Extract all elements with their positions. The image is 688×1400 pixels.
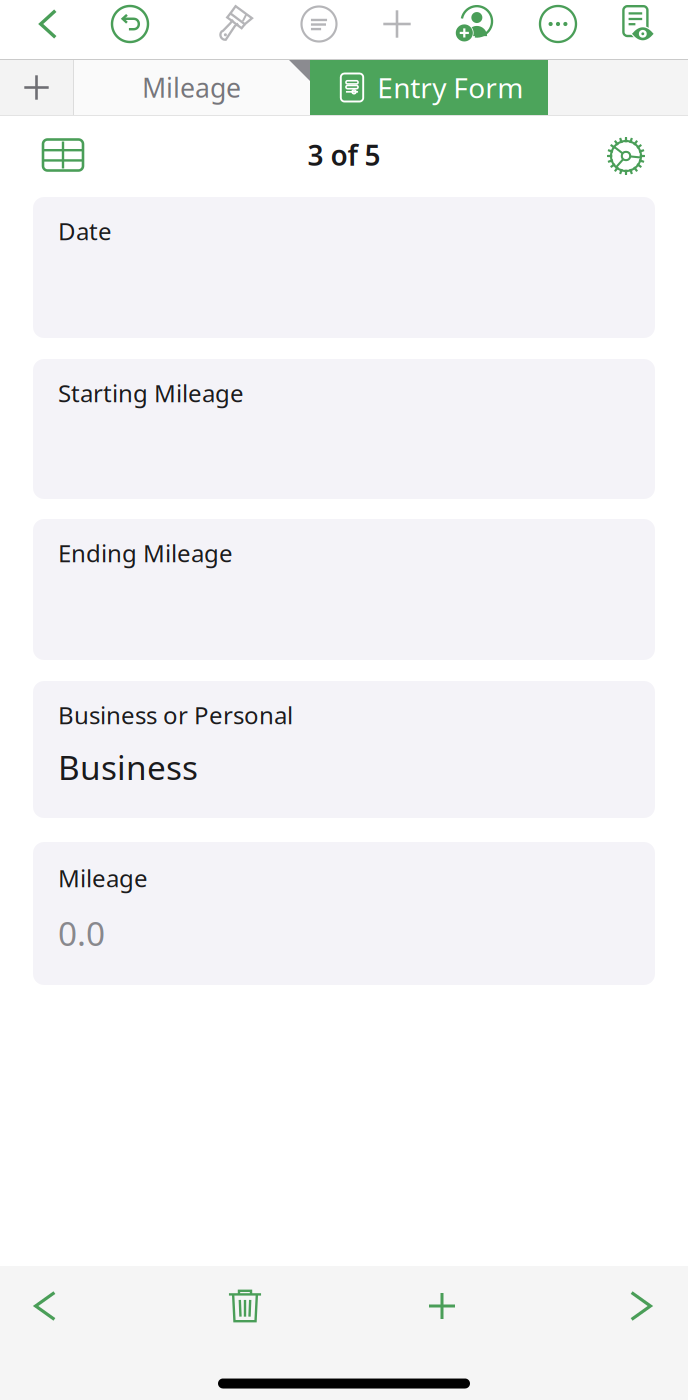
- staticText: Entry Form: [377, 69, 523, 106]
- staticText: Business or Personal: [58, 699, 293, 731]
- button[interactable]: Add record: [404, 1272, 480, 1340]
- button[interactable]: Form settings: [589, 128, 663, 184]
- staticText: 3 of 5: [307, 136, 380, 174]
- staticText: Starting Mileage: [58, 377, 244, 409]
- staticText: Mileage: [58, 862, 148, 894]
- button[interactable]: Insert: [364, 0, 430, 48]
- staticText: 0.0: [58, 911, 105, 955]
- button[interactable]: Paragraph style: [284, 0, 354, 48]
- button[interactable]: Mileage: [33, 842, 655, 985]
- button[interactable]: Starting Mileage: [33, 359, 655, 499]
- button[interactable]: Collaborate: [439, 0, 509, 48]
- button[interactable]: More: [523, 0, 593, 48]
- button[interactable]: Previous record: [7, 1272, 83, 1340]
- button[interactable]: Delete record: [207, 1272, 283, 1340]
- button[interactable]: Ending Mileage: [33, 519, 655, 660]
- button[interactable]: Date: [33, 197, 655, 338]
- button[interactable]: Preview: [602, 0, 672, 48]
- button[interactable]: Show table: [26, 127, 100, 183]
- staticText: Business: [58, 745, 198, 789]
- staticText: Date: [58, 215, 112, 247]
- button[interactable]: Add sheet: [0, 59, 73, 116]
- button[interactable]: Undo: [95, 0, 165, 48]
- button[interactable]: Format: [197, 0, 277, 48]
- staticText: Ending Mileage: [58, 537, 233, 569]
- button[interactable]: Business or Personal: [33, 681, 655, 818]
- staticText: Mileage: [142, 70, 241, 105]
- button[interactable]: Back: [8, 0, 88, 48]
- button[interactable]: Next record: [603, 1272, 679, 1340]
- button[interactable]: Entry Form: [310, 59, 548, 116]
- button[interactable]: Mileage: [73, 59, 310, 116]
